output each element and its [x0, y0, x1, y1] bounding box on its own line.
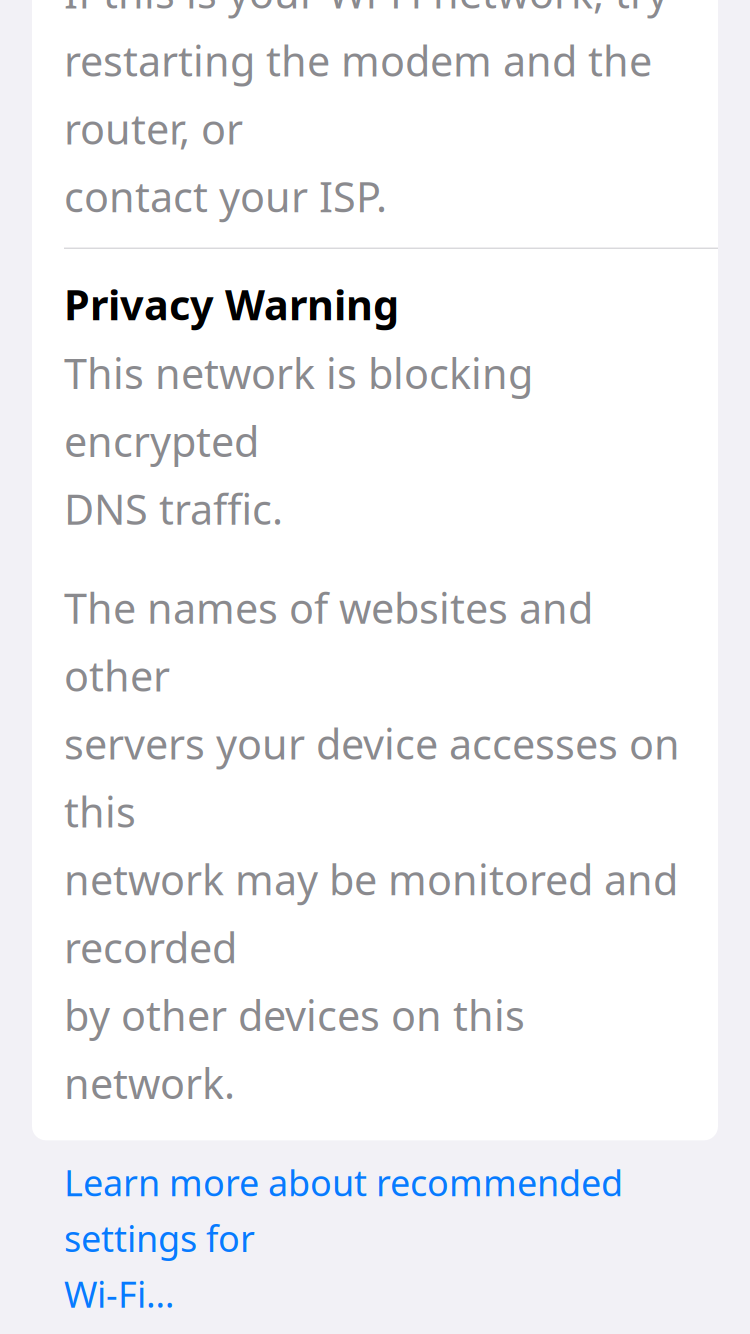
staticText: The names of websites and other servers … [64, 580, 680, 1110]
button[interactable]: Learn more about recommended settings fo… [0, 1140, 750, 1334]
staticText: This network is blocking encrypted DNS t… [64, 346, 533, 536]
staticText: Privacy Warning [64, 277, 399, 332]
staticText: Learn more about recommended settings fo… [64, 1158, 623, 1318]
staticText: If this is your Wi-Fi network, try resta… [64, 0, 668, 224]
